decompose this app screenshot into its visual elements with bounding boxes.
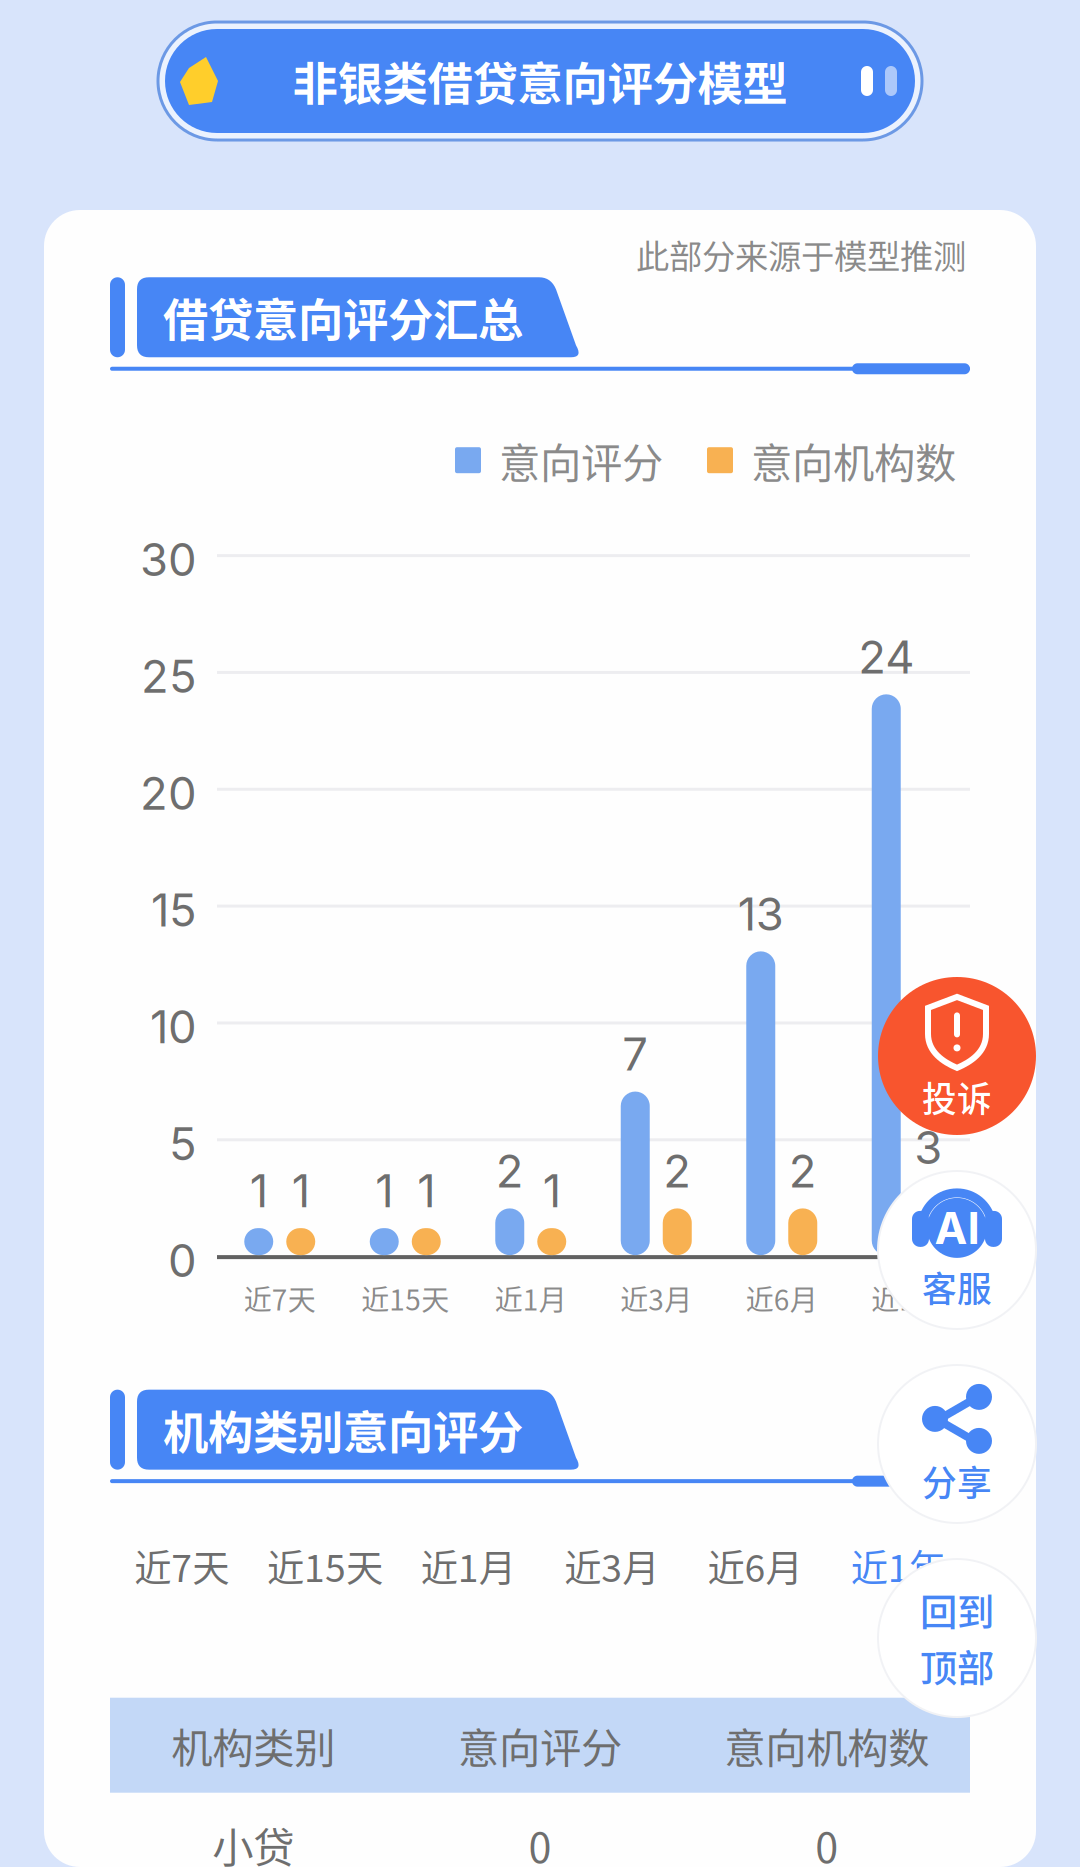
staticText: 5 — [169, 1116, 197, 1171]
staticText: 25 — [141, 649, 197, 704]
staticText: 意向评分 — [499, 430, 663, 490]
button[interactable]: 近3月 — [540, 1539, 683, 1616]
staticText: 13 — [738, 886, 784, 941]
staticText: 此部分来源于模型推测 — [636, 230, 966, 278]
staticText: 2 — [663, 1143, 691, 1198]
staticText: 客服 — [922, 1262, 992, 1312]
button[interactable]: 分享 — [878, 1365, 1036, 1523]
staticText: 24 — [858, 629, 914, 684]
staticText: 顶部 — [920, 1639, 994, 1693]
button[interactable]: 近1年 — [827, 1539, 970, 1616]
staticText: 近3月 — [564, 1539, 659, 1593]
staticText: 1 — [375, 1163, 393, 1218]
staticText: 小贷 — [212, 1815, 294, 1867]
staticText: 近1年 — [871, 1278, 943, 1319]
button[interactable]: 非银类借贷意向评分模型 — [158, 22, 922, 140]
staticText: 近6月 — [746, 1278, 818, 1319]
button[interactable]: AI — [878, 1171, 1036, 1329]
staticText: 0 — [815, 1815, 838, 1867]
staticText: 2 — [496, 1143, 524, 1198]
button[interactable]: 近6月 — [683, 1539, 827, 1616]
staticText: 借贷意向评分汇总 — [163, 284, 523, 350]
staticText: 近3月 — [620, 1278, 692, 1319]
staticText: 0 — [168, 1233, 197, 1288]
staticText: AI — [934, 1201, 979, 1254]
staticText: 意向评分 — [458, 1715, 622, 1775]
staticText: 30 — [140, 532, 197, 587]
button[interactable]: 近7天 — [110, 1539, 253, 1616]
staticText: 投诉 — [922, 1072, 992, 1122]
staticText: 分享 — [922, 1456, 992, 1506]
staticText: 1 — [417, 1163, 435, 1218]
staticText: 非银类借贷意向评分模型 — [292, 48, 787, 114]
button[interactable]: 投诉 — [878, 977, 1036, 1135]
staticText: 意向机构数 — [751, 430, 956, 490]
staticText: 近1年 — [851, 1539, 946, 1593]
staticText: 近15天 — [267, 1539, 383, 1593]
staticText: 20 — [140, 766, 197, 821]
staticText: 1 — [250, 1163, 268, 1218]
staticText: 近6月 — [707, 1539, 802, 1593]
staticText: 1 — [543, 1163, 561, 1218]
staticText: 近1月 — [421, 1539, 516, 1593]
staticText: 2 — [789, 1143, 817, 1198]
staticText: 15 — [151, 883, 197, 937]
staticText: 近7天 — [244, 1278, 316, 1319]
staticText: 意向机构数 — [724, 1715, 929, 1775]
button[interactable]: 回到 — [878, 1559, 1036, 1717]
staticText: 10 — [150, 999, 197, 1054]
staticText: 机构类别意向评分 — [163, 1397, 523, 1462]
staticText: 近15天 — [361, 1278, 449, 1319]
staticText: 近1月 — [495, 1278, 567, 1319]
staticText: 近7天 — [134, 1539, 229, 1593]
staticText: 0 — [528, 1815, 551, 1867]
staticText: 1 — [292, 1163, 310, 1218]
button[interactable]: 近15天 — [253, 1539, 397, 1616]
button[interactable]: 近1月 — [397, 1539, 540, 1616]
staticText: 回到 — [920, 1583, 994, 1637]
staticText: 机构类别 — [171, 1715, 335, 1775]
staticText: 7 — [622, 1027, 648, 1082]
staticText: 3 — [914, 1120, 942, 1175]
